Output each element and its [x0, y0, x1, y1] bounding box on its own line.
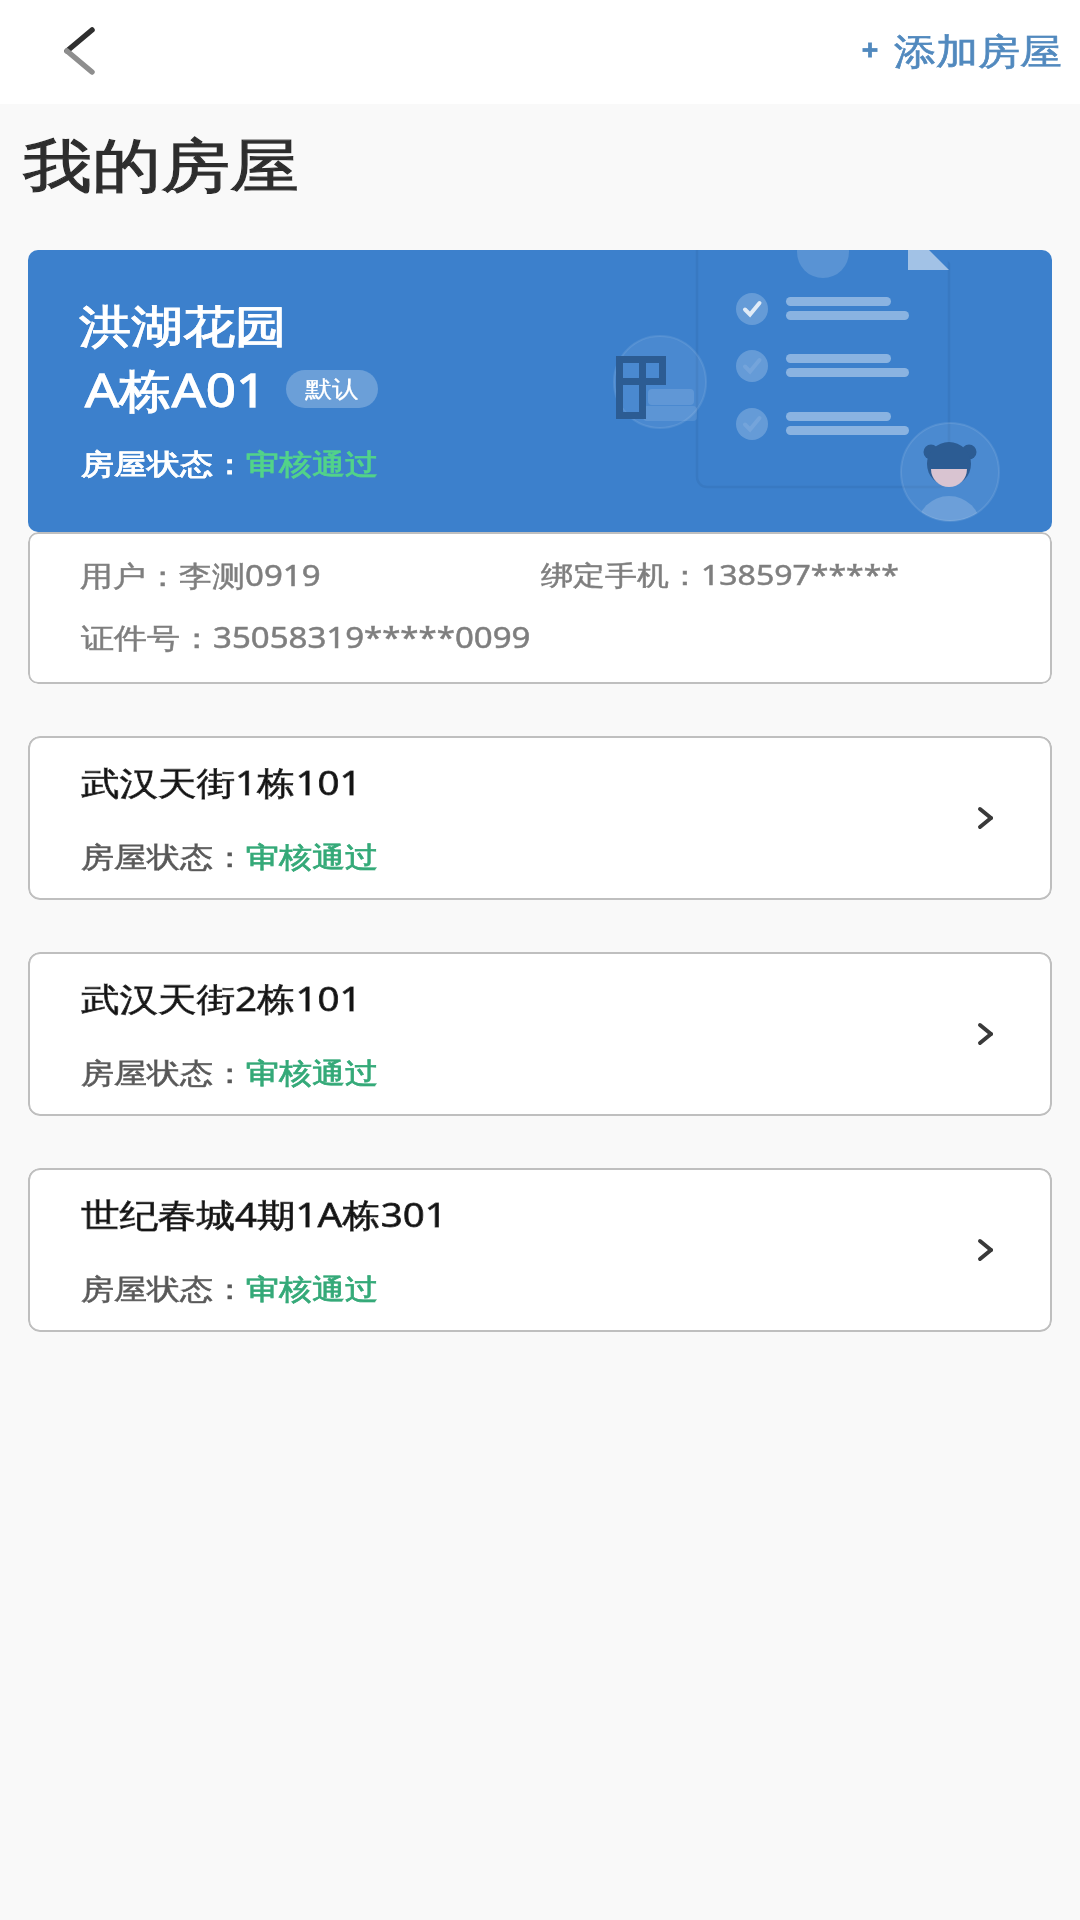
staticText: 洪湖花园: [79, 299, 287, 355]
staticText: 房屋状态：: [81, 1272, 246, 1308]
staticText: 我的房屋: [23, 131, 299, 204]
staticText: 房屋状态：: [81, 447, 246, 483]
staticText: 洪湖花园: [79, 299, 287, 355]
staticText: 绑定手机：138597*****: [541, 556, 899, 594]
staticText: 证件号：35058319*****0099: [81, 618, 531, 656]
button[interactable]: Back: [0, 0, 124, 104]
staticText: 审核通过: [246, 840, 378, 876]
staticText: 添加房屋: [894, 30, 1062, 75]
staticText: 世纪春城4期1A栋301: [81, 1192, 447, 1237]
staticText: 武汉天街2栋101: [81, 976, 362, 1021]
staticText: A栋A01: [85, 358, 267, 420]
button[interactable]: [28, 250, 1052, 532]
staticText: A栋A01: [85, 358, 267, 420]
staticText: 审核通过: [246, 840, 378, 876]
staticText: 房屋状态：: [81, 840, 246, 876]
staticText: 世纪春城4期1A栋301: [81, 1192, 447, 1237]
staticText: 武汉天街1栋101: [81, 760, 362, 805]
staticText: 用户：李测0919: [80, 556, 321, 594]
button[interactable]: [28, 1168, 1052, 1332]
staticText: 证件号：35058319*****0099: [81, 618, 531, 656]
staticText: 审核通过: [246, 447, 378, 483]
staticText: 用户：李测0919: [80, 556, 321, 594]
staticText: 审核通过: [246, 1272, 378, 1308]
staticText: 默认: [305, 374, 359, 404]
staticText: 房屋状态：: [81, 447, 246, 483]
staticText: 审核通过: [246, 1272, 378, 1308]
staticText: 绑定手机：138597*****: [541, 556, 899, 594]
staticText: 添加房屋: [894, 30, 1062, 75]
staticText: 武汉天街1栋101: [81, 760, 362, 805]
staticText: 房屋状态：: [81, 840, 246, 876]
staticText: 房屋状态：: [81, 1056, 246, 1092]
button[interactable]: [28, 736, 1052, 900]
button[interactable]: [28, 532, 1052, 684]
button[interactable]: [28, 952, 1052, 1116]
staticText: 武汉天街2栋101: [81, 976, 362, 1021]
staticText: 审核通过: [246, 1056, 378, 1092]
staticText: 审核通过: [246, 447, 378, 483]
staticText: 我的房屋: [23, 131, 299, 204]
staticText: 房屋状态：: [81, 1272, 246, 1308]
staticText: 房屋状态：: [81, 1056, 246, 1092]
button[interactable]: [840, 0, 1080, 104]
staticText: 审核通过: [246, 1056, 378, 1092]
